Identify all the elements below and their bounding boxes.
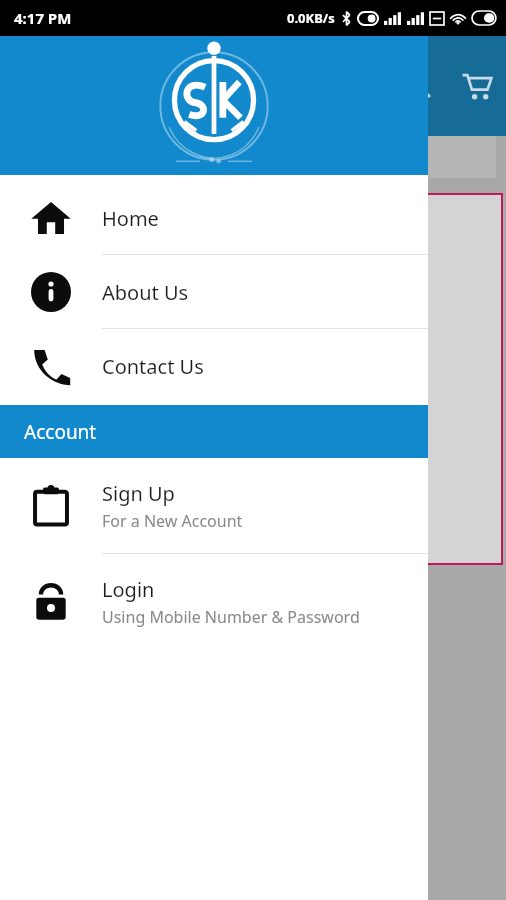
staticText: 4:17 PM	[14, 8, 72, 28]
staticText: 0.0KB/s	[287, 9, 335, 27]
button[interactable]: Search	[402, 69, 436, 103]
button[interactable]	[14, 506, 66, 552]
staticText: For a New Account	[102, 510, 243, 532]
button[interactable]: Sign Up	[0, 458, 428, 554]
button[interactable]: Cart	[458, 67, 496, 105]
staticText: Home	[102, 205, 159, 232]
button[interactable]: Account	[0, 405, 428, 458]
staticText: Account	[24, 419, 97, 445]
button[interactable]: About Us	[0, 255, 428, 329]
staticText: Login	[102, 576, 155, 603]
button[interactable]: Login	[0, 554, 428, 650]
button[interactable]: Home	[0, 181, 428, 255]
staticText: Using Mobile Number & Password	[102, 606, 360, 628]
staticText: Contact Us	[102, 353, 204, 380]
button[interactable]: Contact Us	[0, 329, 428, 403]
staticText: Sign Up	[102, 480, 175, 507]
staticText: About Us	[102, 279, 189, 306]
